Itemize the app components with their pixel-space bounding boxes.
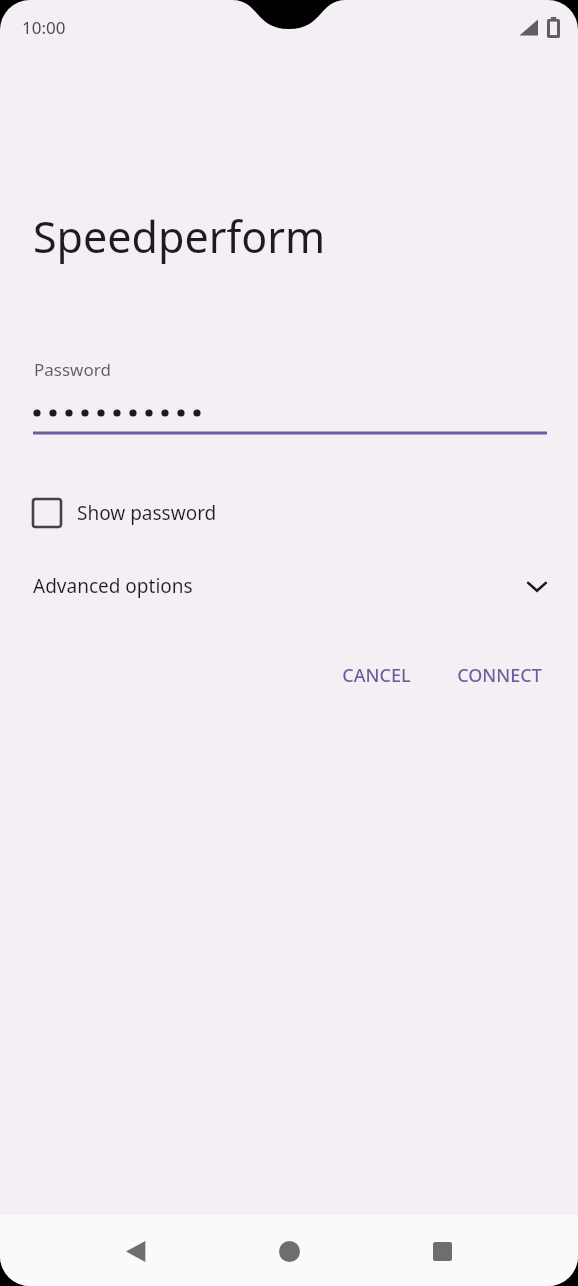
staticText: Password: [34, 358, 111, 381]
other: Expand advanced options: [524, 573, 550, 599]
staticText: Advanced options: [33, 573, 524, 599]
button[interactable]: CONNECT: [443, 653, 556, 698]
button[interactable]: CANCEL: [328, 653, 425, 698]
staticText: Speedperform: [33, 207, 326, 266]
staticText: Show password: [77, 500, 217, 526]
staticText: CONNECT: [457, 663, 542, 688]
button[interactable]: Show password: [31, 495, 219, 531]
button[interactable]: Recent apps: [415, 1224, 469, 1278]
button[interactable]: Home: [262, 1224, 316, 1278]
button[interactable]: [0, 402, 578, 442]
staticText: 10:00: [22, 16, 66, 39]
button[interactable]: Advanced options: [0, 567, 578, 605]
button[interactable]: Back: [109, 1224, 163, 1278]
staticText: CANCEL: [342, 663, 411, 688]
